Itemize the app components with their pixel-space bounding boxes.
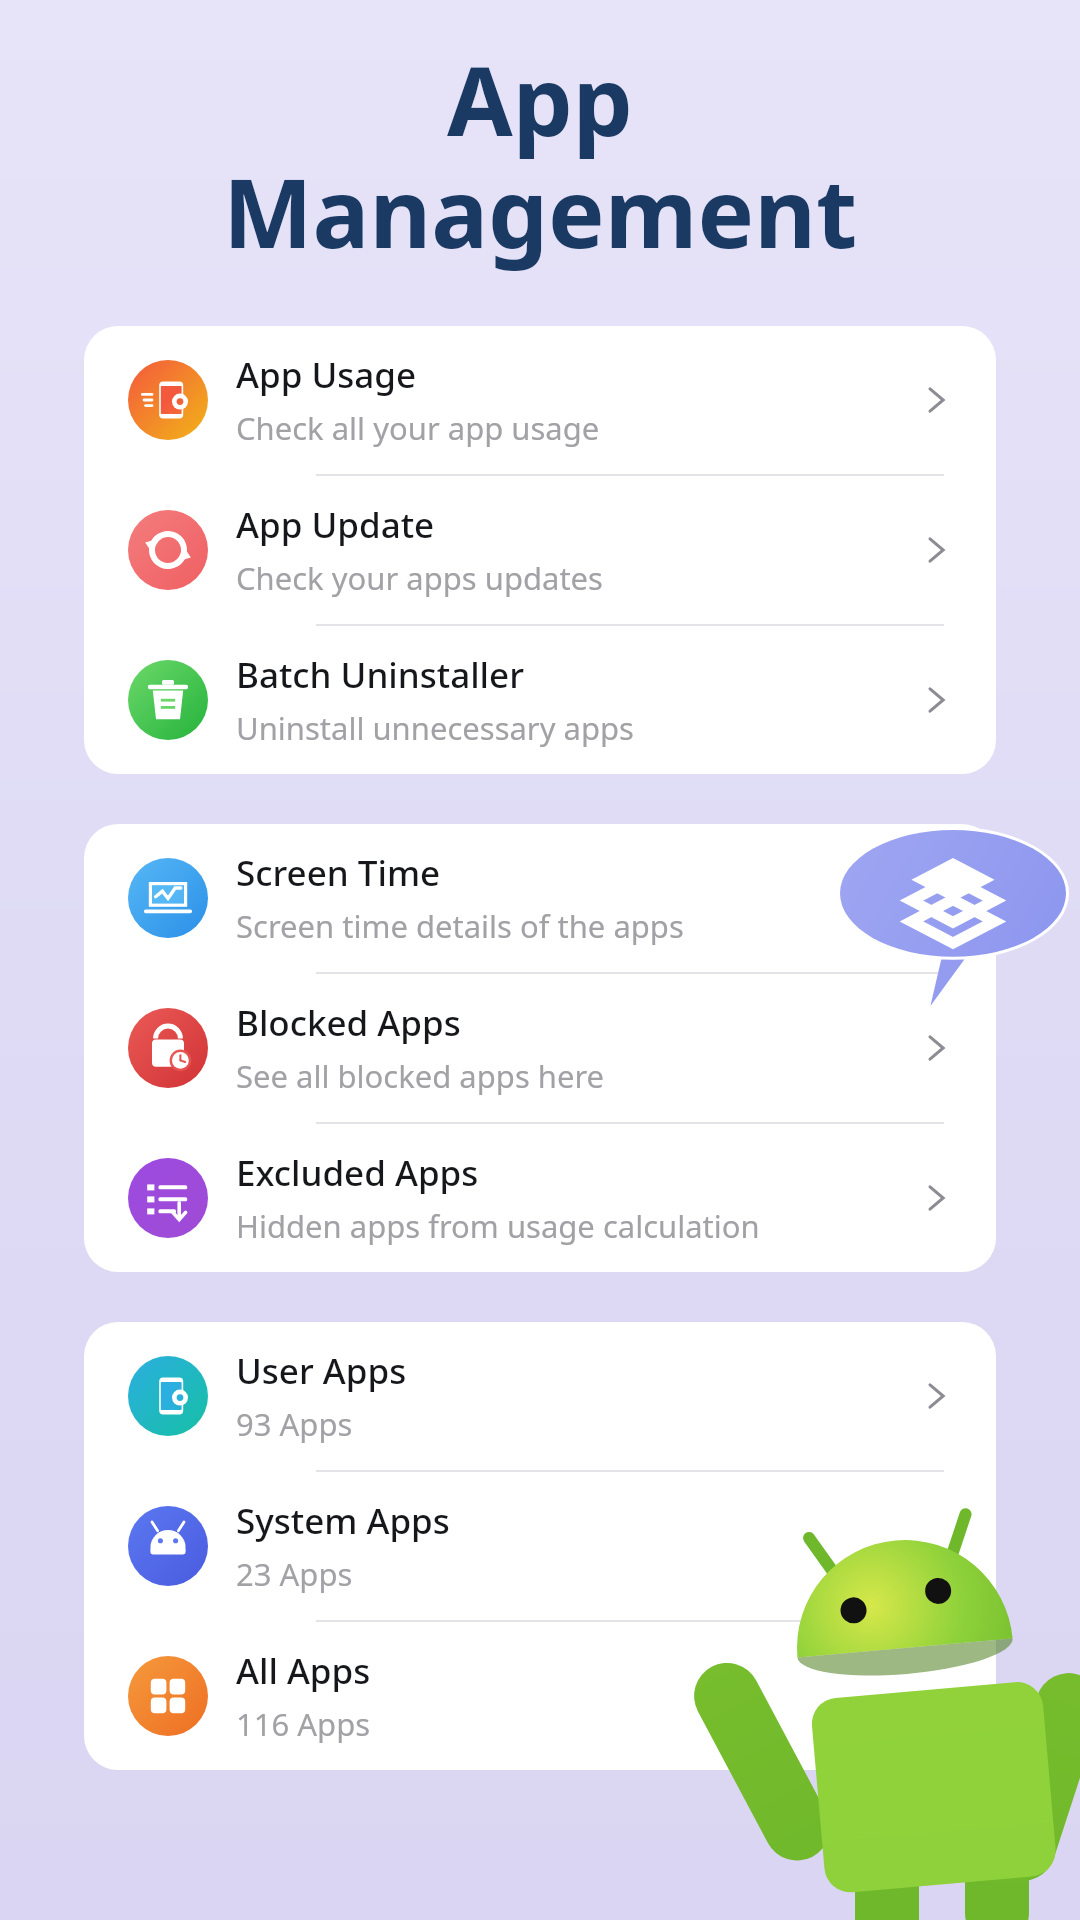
staticText: App Usage <box>236 351 417 399</box>
staticText: All Apps <box>236 1647 371 1695</box>
button[interactable]: All Apps <box>84 1622 996 1770</box>
staticText: 116 Apps <box>236 1703 371 1745</box>
button[interactable]: Excluded Apps <box>84 1124 996 1272</box>
staticText: Check all your app usage <box>236 407 600 449</box>
button[interactable]: Blocked Apps <box>84 974 996 1122</box>
button[interactable]: Batch Uninstaller <box>84 626 996 774</box>
button[interactable]: App Usage <box>84 326 996 474</box>
staticText: Screen time details of the apps <box>236 905 684 947</box>
staticText: See all blocked apps here <box>236 1055 605 1097</box>
staticText: Excluded Apps <box>236 1149 479 1197</box>
staticText: Blocked Apps <box>236 999 461 1047</box>
button[interactable]: App Update <box>84 476 996 624</box>
staticText: App Management <box>0 34 1080 276</box>
staticText: Screen Time <box>236 849 441 897</box>
staticText: Batch Uninstaller <box>236 651 524 699</box>
staticText: User Apps <box>236 1347 407 1395</box>
staticText: Check your apps updates <box>236 557 603 599</box>
staticText: Hidden apps from usage calculation <box>236 1205 760 1247</box>
staticText: System Apps <box>236 1497 450 1545</box>
button[interactable]: Screen Time <box>84 824 996 972</box>
staticText: 93 Apps <box>236 1403 353 1445</box>
button[interactable]: Layers <box>840 830 1066 1006</box>
staticText: App Update <box>236 501 435 549</box>
button[interactable]: System Apps <box>84 1472 996 1620</box>
button[interactable]: User Apps <box>84 1322 996 1470</box>
staticText: 23 Apps <box>236 1553 353 1595</box>
staticText: Uninstall unnecessary apps <box>236 707 634 749</box>
